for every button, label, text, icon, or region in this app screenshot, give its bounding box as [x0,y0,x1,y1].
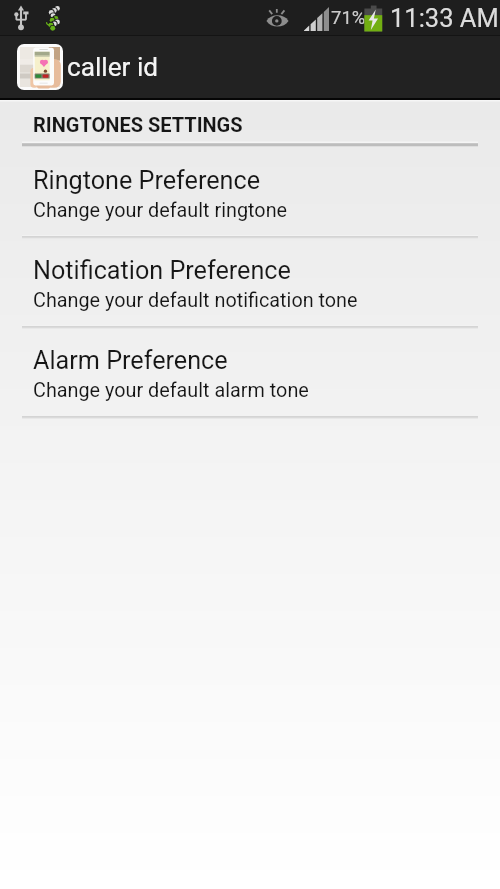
staticText: Ringtone Preference [33,166,261,196]
other: Smart stay [266,9,289,26]
staticText: Change your default ringtone [33,199,288,222]
other: Battery charging 71 percent [364,5,383,32]
staticText: 71% [331,7,366,29]
staticText: Notification Preference [33,256,291,286]
staticText: RINGTONES SETTINGS [33,113,243,136]
staticText: 11:33 AM [390,3,499,33]
staticText: Alarm Preference [33,346,228,376]
button[interactable]: Notification Preference [0,240,500,330]
staticText: caller id [67,52,159,83]
other: Signal strength [304,7,329,31]
other: caller id app icon [17,44,63,90]
other: USB debugging connected [47,6,60,30]
button[interactable]: Alarm Preference [0,330,500,420]
button[interactable]: Ringtone Preference [0,150,500,240]
other: USB connected [13,5,29,31]
staticText: Change your default notification tone [33,289,358,312]
button[interactable]: caller id app icon [0,36,500,98]
staticText: Change your default alarm tone [33,379,309,402]
